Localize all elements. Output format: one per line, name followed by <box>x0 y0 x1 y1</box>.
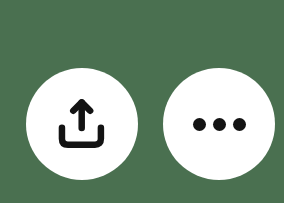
button[interactable]: More options <box>163 68 275 180</box>
button[interactable]: Share <box>26 68 138 180</box>
